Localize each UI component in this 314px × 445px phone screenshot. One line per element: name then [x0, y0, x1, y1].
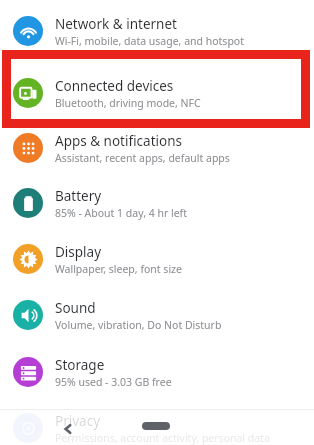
button[interactable]: Network & internet [0, 8, 314, 54]
staticText: Storage [55, 356, 105, 374]
staticText: Battery [55, 187, 102, 205]
button[interactable]: Display [0, 236, 314, 282]
button[interactable]: Sound [0, 292, 314, 338]
staticText: Network & internet [55, 15, 177, 33]
button[interactable]: Storage [0, 349, 314, 395]
staticText: Sound [55, 299, 96, 317]
button[interactable]: Battery [0, 180, 314, 226]
staticText: Display [55, 243, 102, 261]
staticText: Apps & notifications [55, 132, 182, 150]
staticText: 85% - About 1 day, 4 hr left [55, 206, 187, 220]
staticText: Wallpaper, sleep, font size [55, 262, 182, 276]
button[interactable]: Back [56, 412, 80, 445]
button[interactable]: Home [142, 422, 170, 430]
staticText: 95% used - 3.03 GB free [55, 375, 172, 389]
staticText: Wi-Fi, mobile, data usage, and hotspot [55, 34, 244, 48]
button[interactable]: Apps & notifications [0, 125, 314, 171]
button[interactable]: Privacy [0, 406, 314, 445]
staticText: Connected devices [55, 77, 174, 95]
staticText: Volume, vibration, Do Not Disturb [55, 318, 222, 332]
staticText: Permissions, account activity, personal … [55, 431, 270, 445]
staticText: Assistant, recent apps, default apps [55, 151, 230, 165]
staticText: Privacy [55, 412, 101, 430]
button[interactable]: Connected devices [0, 70, 314, 116]
staticText: Bluetooth, driving mode, NFC [55, 96, 201, 110]
